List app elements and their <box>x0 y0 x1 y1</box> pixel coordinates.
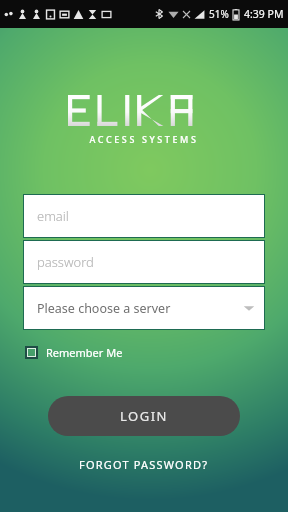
staticText: 51% <box>209 7 229 21</box>
button[interactable]: FORGOT PASSWORD? <box>69 453 219 476</box>
staticText: ACCESS SYSTEMS <box>89 133 199 145</box>
other: Open server list <box>243 302 255 314</box>
button[interactable]: Please choose a server <box>23 286 265 330</box>
staticText: Remember Me <box>46 345 123 360</box>
staticText: 4:39 PM <box>244 7 284 21</box>
staticText: LOGIN <box>120 407 168 425</box>
button[interactable]: LOGIN <box>48 396 240 436</box>
button[interactable]: email <box>23 194 265 238</box>
staticText: Please choose a server <box>37 300 171 317</box>
staticText: FORGOT PASSWORD? <box>79 457 209 472</box>
staticText: password <box>37 253 94 271</box>
staticText: email <box>37 207 69 225</box>
button[interactable]: Remember Me <box>23 341 125 364</box>
button[interactable]: password <box>23 240 265 284</box>
